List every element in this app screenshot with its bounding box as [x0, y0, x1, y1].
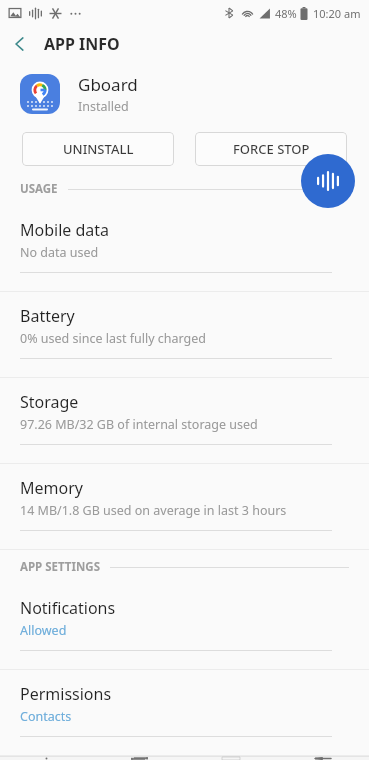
staticText: Mobile data [20, 219, 110, 241]
staticText: USAGE [20, 181, 58, 197]
staticText: Storage [20, 391, 79, 413]
staticText: Contacts [20, 708, 72, 725]
button[interactable]: Back [0, 26, 40, 62]
staticText: Memory [20, 477, 83, 499]
staticText: 14 MB/1.8 GB used on average in last 3 h… [20, 502, 287, 519]
staticText: Gboard [78, 73, 138, 96]
button[interactable]: FORCE STOP [195, 132, 347, 166]
button[interactable]: Mobile data [0, 206, 369, 292]
button[interactable]: Voice input [301, 154, 355, 208]
staticText: APP SETTINGS [20, 559, 100, 575]
staticText: Allowed [20, 622, 67, 639]
staticText: 97.26 MB/32 GB of internal storage used [20, 416, 258, 433]
button[interactable]: Memory [0, 464, 369, 550]
button[interactable]: Notifications [0, 584, 369, 670]
button[interactable]: Gboard [0, 62, 369, 126]
staticText: FORCE STOP [233, 140, 310, 158]
staticText: Notifications [20, 597, 116, 619]
staticText: No data used [20, 244, 99, 261]
staticText: 48% [275, 6, 297, 21]
button[interactable]: Back [277, 757, 369, 760]
staticText: Battery [20, 305, 75, 327]
staticText: UNINSTALL [63, 140, 134, 158]
button[interactable]: Home [185, 757, 277, 760]
button[interactable]: Menu [0, 757, 93, 760]
staticText: Installed [78, 98, 129, 115]
button[interactable]: Permissions [0, 670, 369, 756]
staticText: 10:20 am [313, 6, 361, 21]
staticText: APP INFO [44, 33, 120, 55]
staticText: Permissions [20, 683, 112, 705]
button[interactable]: Storage [0, 378, 369, 464]
button[interactable]: UNINSTALL [22, 132, 174, 166]
staticText: 0% used since last fully charged [20, 330, 207, 347]
button[interactable]: Recents [93, 757, 185, 760]
button[interactable]: Battery [0, 292, 369, 378]
